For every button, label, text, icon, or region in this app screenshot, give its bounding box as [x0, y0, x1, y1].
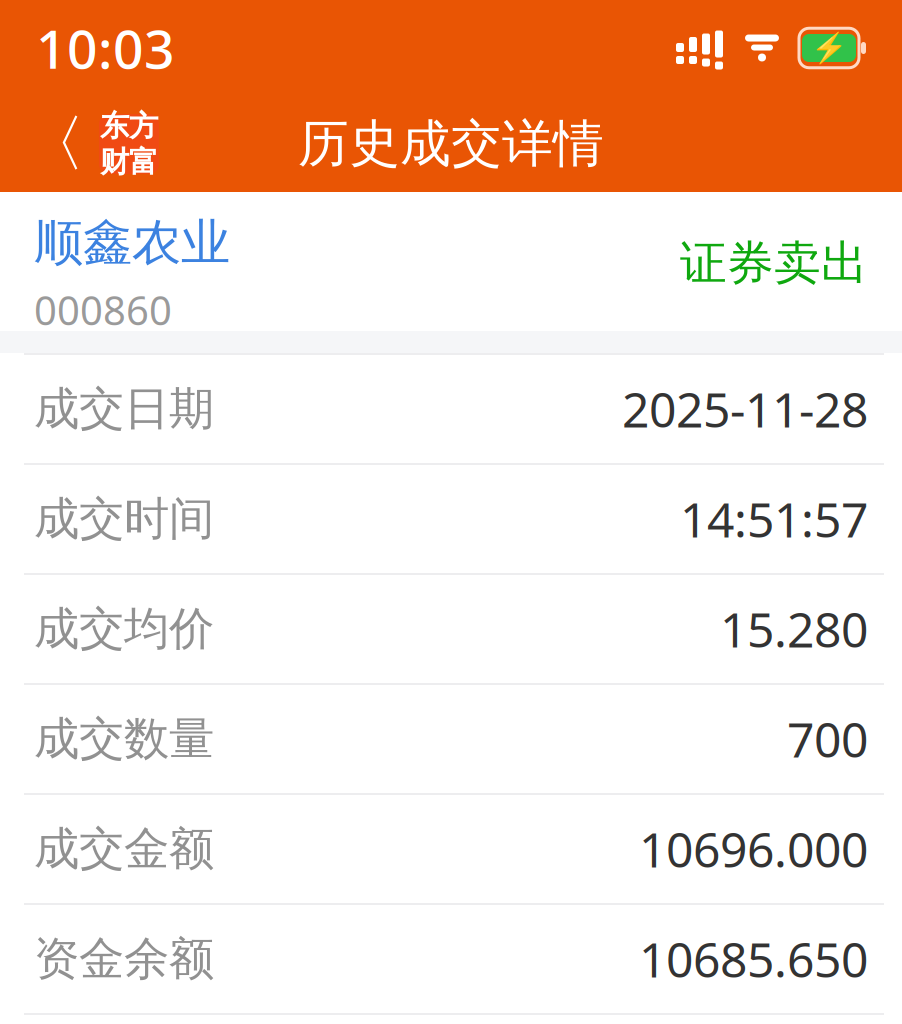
staticText: 财 [100, 144, 129, 180]
staticText: 成交数量 [34, 711, 214, 767]
staticText: 成交日期 [34, 381, 214, 437]
staticText: 〈 [24, 106, 85, 182]
staticText: 700 [787, 707, 868, 771]
staticText: 2025-11-28 [622, 377, 868, 441]
staticText: 东 [100, 108, 129, 144]
staticText: 富 [129, 144, 158, 180]
staticText: 15.280 [720, 597, 868, 661]
staticText: 10685.650 [639, 927, 868, 991]
staticText: 历史成交详情 [298, 113, 604, 175]
staticText: 成交金额 [34, 821, 214, 877]
staticText: 000860 [34, 283, 172, 336]
staticText: 14:51:57 [680, 487, 868, 551]
staticText: 成交均价 [34, 601, 214, 657]
staticText: ⚡ [810, 31, 847, 65]
staticText: 成交时间 [34, 491, 214, 547]
staticText: 证券卖出 [680, 235, 868, 292]
button[interactable]: 返回 东方财富 [0, 96, 183, 192]
staticText: 方 [129, 108, 158, 144]
staticText: 10696.000 [639, 817, 868, 881]
staticText: 顺鑫农业 [34, 213, 230, 273]
staticText: 资金余额 [34, 931, 214, 987]
staticText: 10:03 [36, 13, 175, 83]
